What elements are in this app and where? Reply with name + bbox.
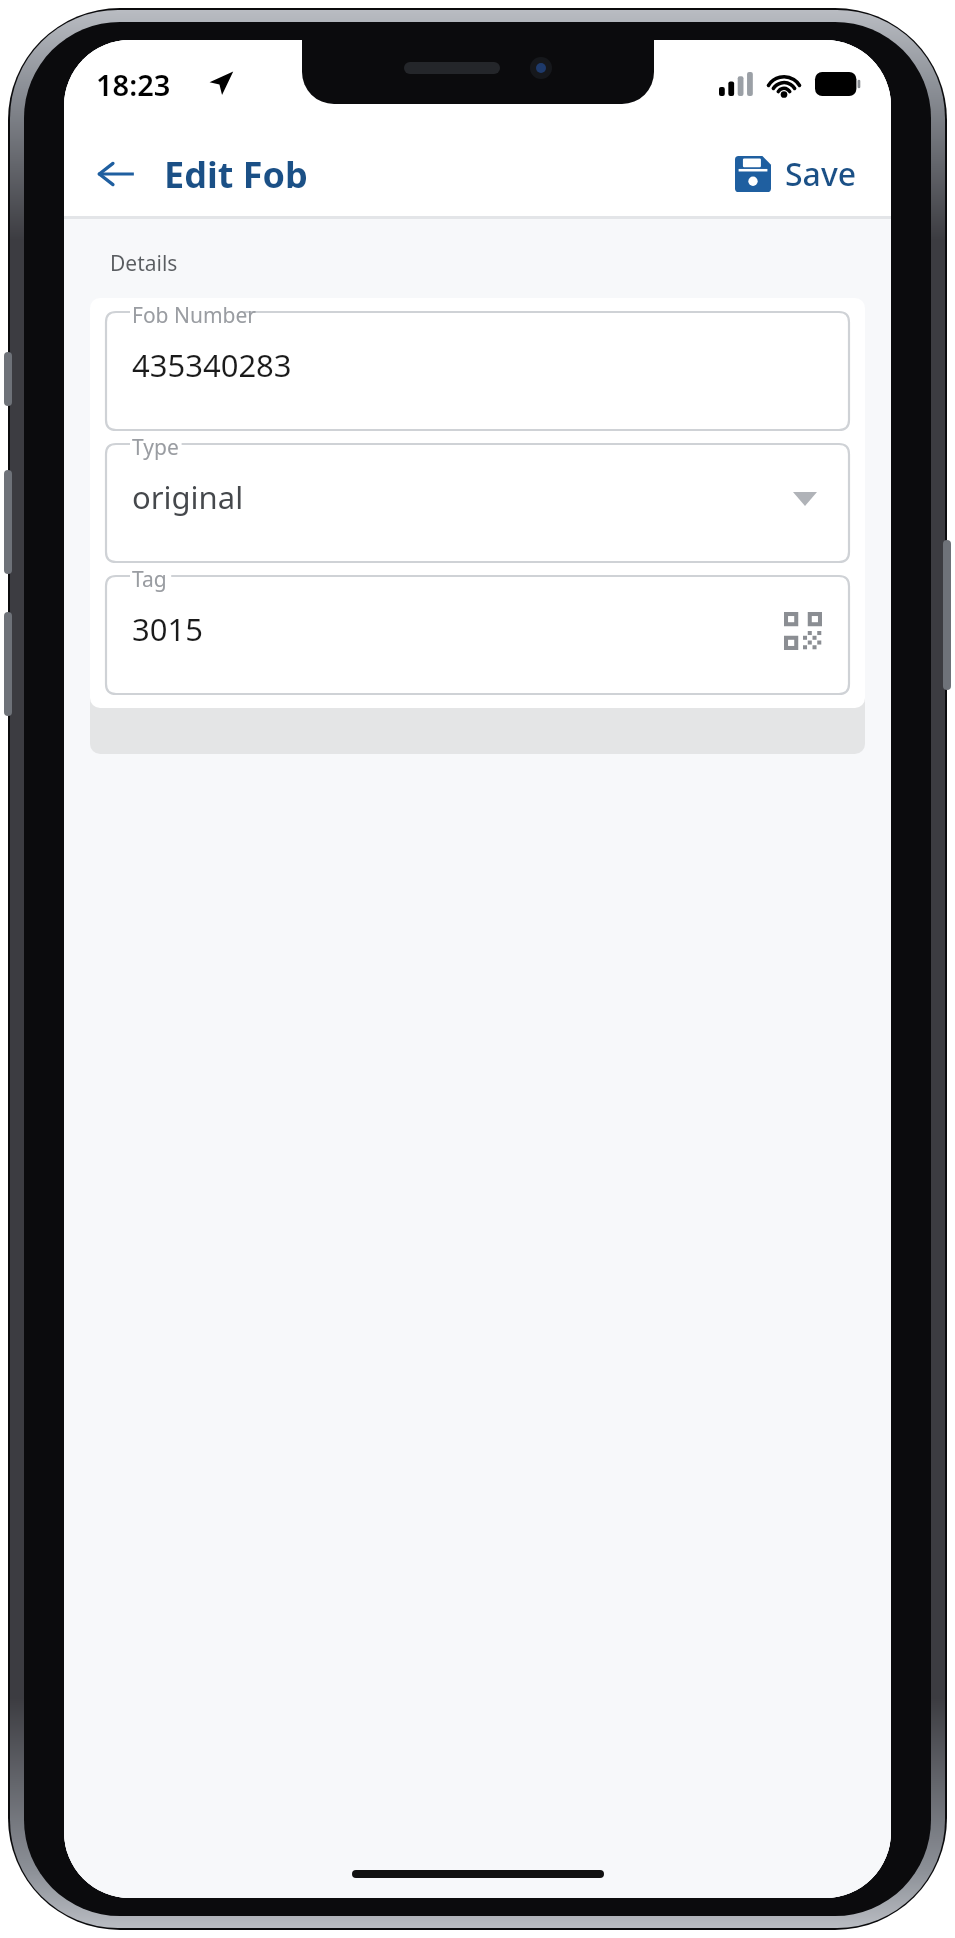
button[interactable]: Type bbox=[106, 444, 849, 562]
staticText: Fob Number bbox=[132, 301, 256, 330]
staticText: Save bbox=[785, 152, 857, 196]
staticText: 18:23 bbox=[96, 65, 171, 104]
staticText: 3015 bbox=[132, 608, 203, 650]
staticText: Tag bbox=[132, 565, 167, 594]
staticText: Type bbox=[132, 433, 179, 462]
button[interactable]: Fob Number bbox=[106, 312, 849, 430]
staticText: Edit Fob bbox=[164, 150, 308, 199]
button[interactable]: Open type menu bbox=[783, 477, 827, 521]
staticText: 435340283 bbox=[132, 344, 292, 386]
button[interactable]: Tag bbox=[106, 576, 849, 694]
staticText: Details bbox=[110, 249, 178, 278]
button[interactable]: Save bbox=[725, 144, 867, 204]
button[interactable]: Back bbox=[80, 138, 152, 210]
staticText: original bbox=[132, 476, 244, 518]
button[interactable]: Scan QR code bbox=[777, 605, 829, 657]
